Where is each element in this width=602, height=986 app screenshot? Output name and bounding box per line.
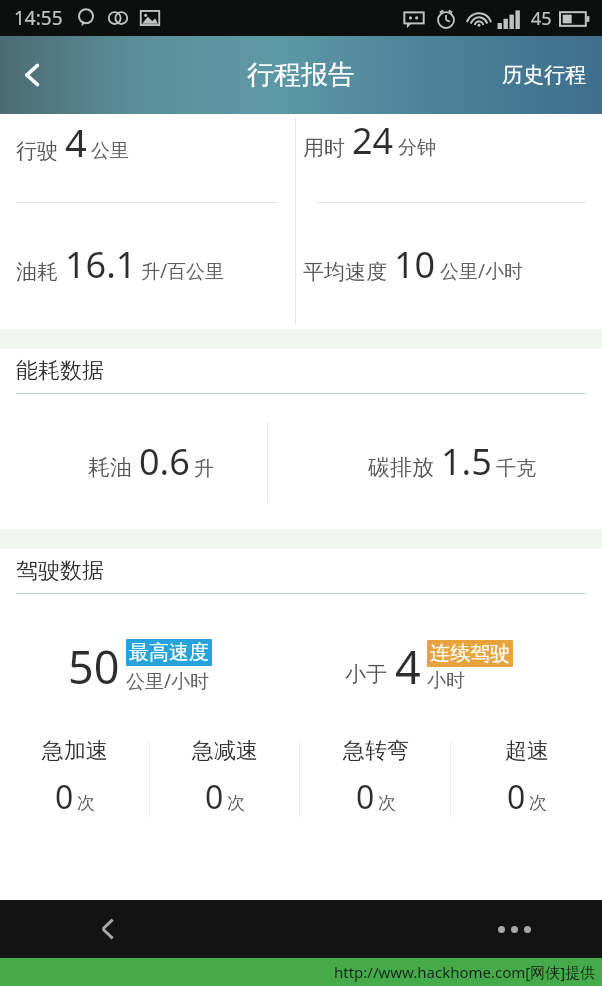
staticText: 油耗 [16,259,58,285]
staticText: http://www.hackhome.com[网侠]提供 [334,962,596,982]
staticText: 0 [205,775,224,819]
staticText: 公里/小时 [126,668,210,694]
staticText: 碳排放 [368,454,434,482]
staticText: 次 [378,792,396,815]
staticText: 用时 [303,135,345,161]
button[interactable]: 急转弯 [300,719,451,839]
staticText: 升/百公里 [141,258,225,284]
staticText: 连续驾驶 [430,641,510,666]
staticText: 14:55 [14,5,63,31]
button[interactable]: 急减速 [150,719,300,839]
staticText: 24 [352,116,394,165]
button[interactable]: 急加速 [0,719,150,839]
staticText: 0 [55,775,74,819]
staticText: 次 [529,792,547,815]
staticText: 急减速 [192,737,258,765]
staticText: 4 [65,116,87,168]
button[interactable]: 超速 [451,719,602,839]
staticText: 平均速度 [303,259,387,285]
staticText: 50 [68,636,120,697]
staticText: 0 [356,775,375,819]
staticText: 急加速 [42,737,108,765]
staticText: 历史行程 [502,62,586,88]
staticText: 公里/小时 [440,258,524,284]
staticText: 次 [77,792,95,815]
staticText: 4 [395,636,421,697]
staticText: 次 [227,792,245,815]
staticText: 能耗数据 [16,357,104,385]
staticText: 小于 [345,661,387,687]
staticText: 45 [531,6,552,31]
staticText: 最高速度 [129,640,209,665]
staticText: 分钟 [398,136,436,160]
button[interactable]: More options [486,901,542,957]
staticText: 急转弯 [343,737,409,765]
staticText: 驾驶数据 [16,557,104,585]
staticText: 1.5 [441,437,492,486]
staticText: 小时 [427,669,465,693]
staticText: 行程报告 [247,58,355,92]
staticText: 公里 [91,139,129,163]
staticText: 0 [507,775,526,819]
staticText: 千克 [496,456,536,481]
staticText: 升 [194,456,214,481]
staticText: 16.1 [65,240,137,289]
button[interactable]: Back [0,42,66,108]
button[interactable]: 历史行程 [486,48,602,102]
staticText: 行驶 [16,138,58,164]
button[interactable]: Back [80,901,136,957]
staticText: 0.6 [139,437,190,486]
staticText: 耗油 [88,454,132,482]
staticText: 超速 [505,737,549,765]
staticText: 10 [394,240,436,289]
